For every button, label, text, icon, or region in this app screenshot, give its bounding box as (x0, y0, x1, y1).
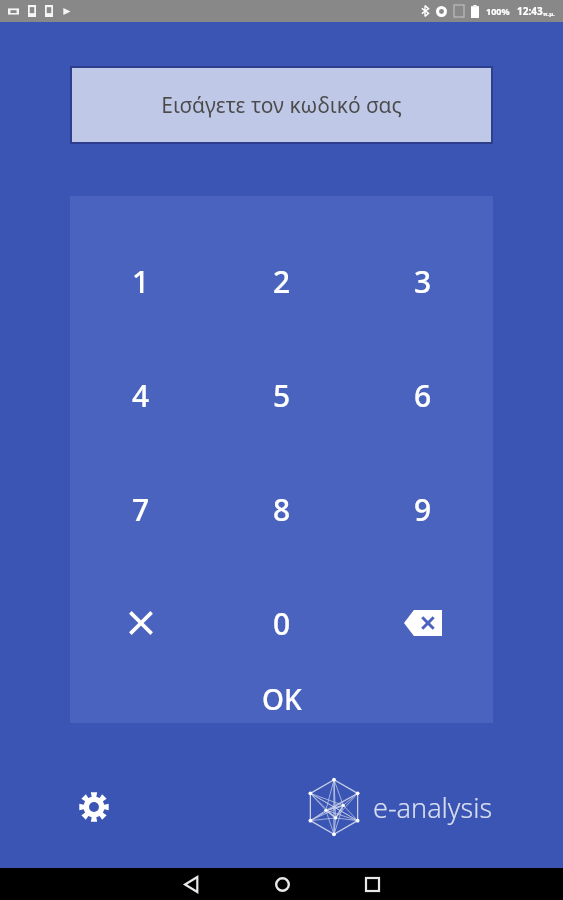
staticText: 5 (273, 375, 291, 416)
button[interactable]: 1 (70, 224, 211, 338)
button[interactable]: 8 (211, 452, 352, 566)
staticText: 4 (132, 375, 150, 416)
button[interactable]: Home (250, 868, 314, 900)
staticText: 7 (132, 489, 150, 530)
button[interactable]: 0 (211, 566, 352, 680)
button[interactable]: 2 (211, 224, 352, 338)
button[interactable]: 3 (352, 224, 493, 338)
button[interactable]: Εισάγετε τον κωδικό σας (72, 68, 491, 142)
button[interactable]: Recent apps (340, 868, 404, 900)
button[interactable]: Clear (70, 566, 211, 680)
staticText: 3 (414, 261, 432, 302)
button[interactable]: Backspace (352, 566, 493, 680)
button[interactable]: 7 (70, 452, 211, 566)
staticText: 2 (273, 261, 291, 302)
button[interactable]: OK (70, 680, 493, 723)
staticText: OK (262, 680, 302, 715)
staticText: 8 (273, 489, 291, 530)
button[interactable]: 4 (70, 338, 211, 452)
button[interactable]: 9 (352, 452, 493, 566)
staticText: 12:43 (517, 4, 543, 18)
button[interactable]: Settings (70, 783, 118, 831)
staticText: e-analysis (373, 789, 493, 826)
staticText: 6 (414, 375, 432, 416)
staticText: 0 (273, 603, 291, 644)
button[interactable]: 5 (211, 338, 352, 452)
staticText: 100% (486, 5, 510, 17)
staticText: 1 (132, 261, 150, 302)
staticText: π.μ. (543, 10, 555, 18)
button[interactable]: 6 (352, 338, 493, 452)
staticText: 9 (414, 489, 432, 530)
button[interactable]: Back (160, 868, 224, 900)
staticText: Εισάγετε τον κωδικό σας (161, 91, 402, 120)
